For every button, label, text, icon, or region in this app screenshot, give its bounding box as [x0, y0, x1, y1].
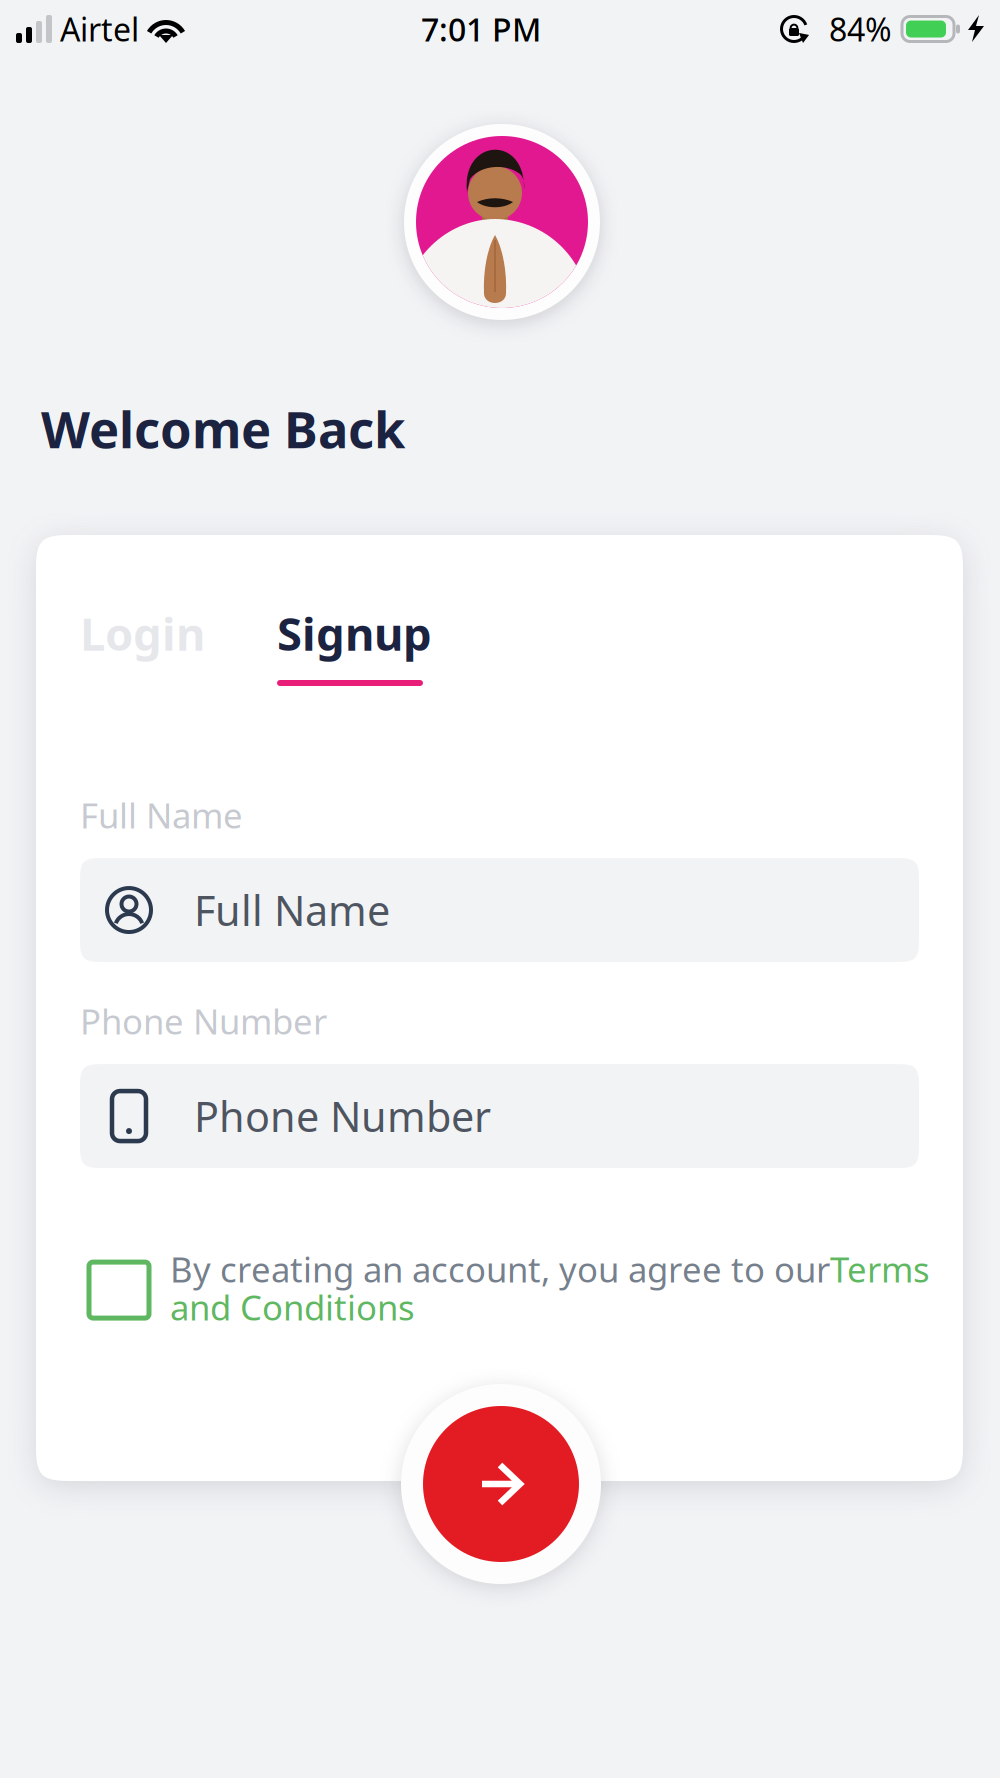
- staticText: Phone Number: [194, 1089, 491, 1143]
- staticText: Welcome Back: [41, 395, 405, 462]
- button[interactable]: Continue: [401, 1384, 601, 1584]
- staticText: 7:01 PM: [421, 8, 541, 50]
- staticText: Phone Number: [80, 998, 327, 1044]
- button[interactable]: Login: [80, 603, 205, 655]
- button[interactable]: By creating an account, you agree to our: [36, 1246, 982, 1330]
- staticText: Signup: [277, 603, 432, 663]
- button[interactable]: Signup: [277, 603, 432, 686]
- staticText: Airtel: [60, 8, 139, 50]
- staticText: By creating an account, you agree to our: [170, 1246, 830, 1292]
- staticText: Full Name: [80, 792, 243, 838]
- staticText: 84%: [829, 8, 892, 50]
- staticText: Login: [80, 603, 205, 663]
- staticText: and Conditions: [170, 1284, 415, 1330]
- staticText: Terms: [830, 1246, 930, 1292]
- staticText: Full Name: [194, 883, 390, 937]
